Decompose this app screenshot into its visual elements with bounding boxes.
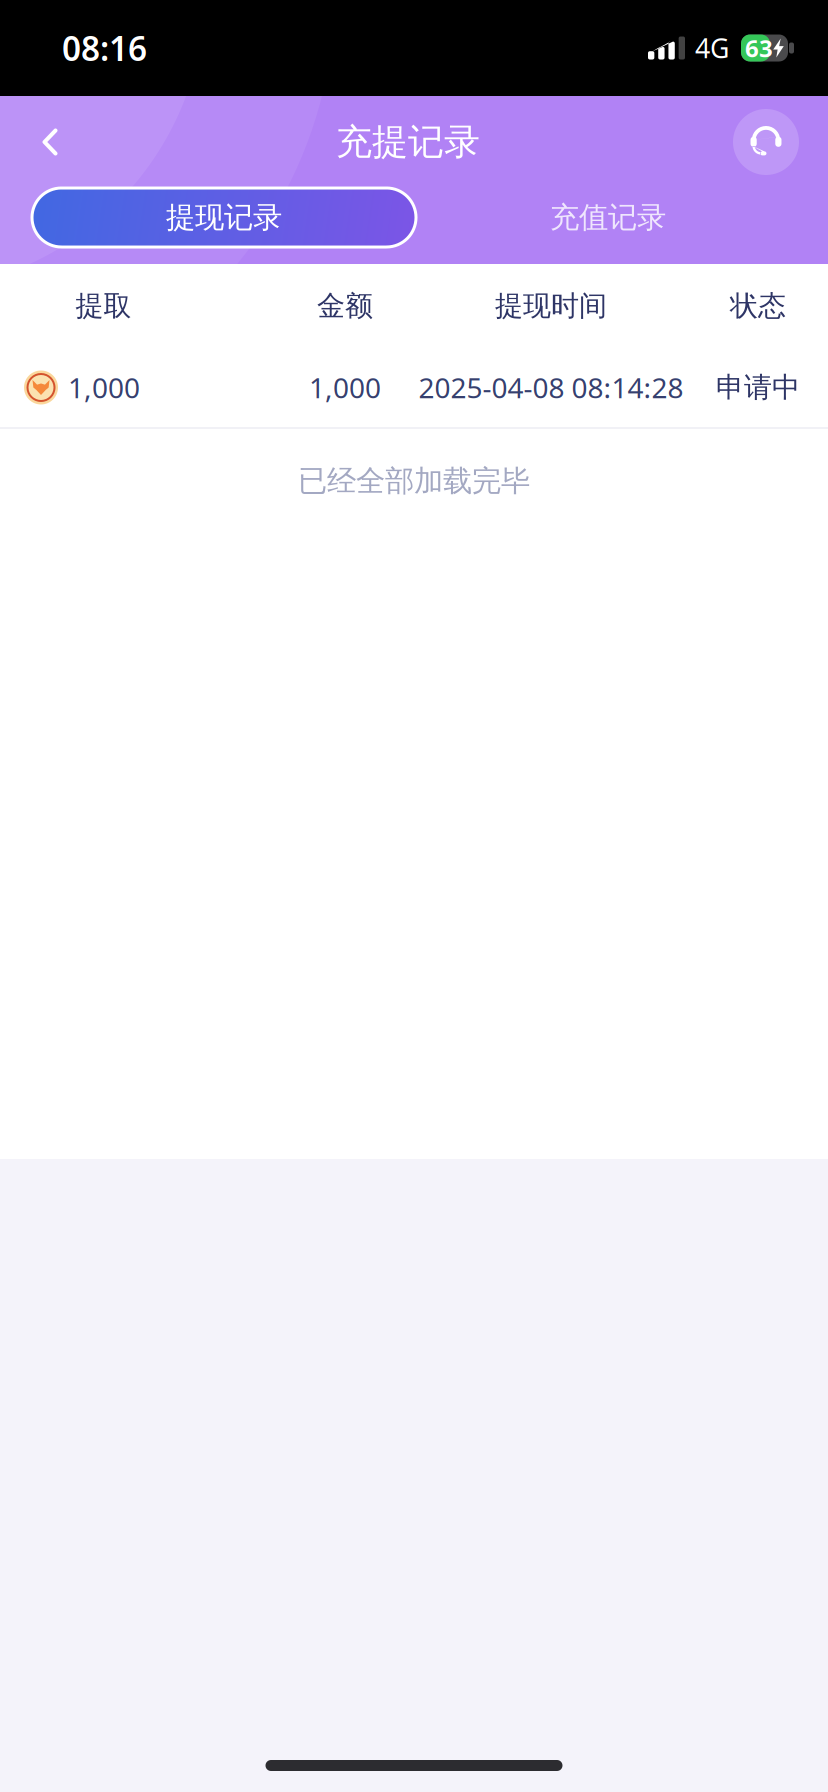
button[interactable]: Customer service [720, 96, 812, 188]
staticText: 金额 [317, 289, 373, 323]
button[interactable]: 1,000 [0, 348, 828, 427]
staticText: 08:16 [62, 26, 147, 70]
staticText: 1,000 [68, 369, 140, 406]
staticText: 充提记录 [336, 120, 480, 164]
staticText: 2025-04-08 08:14:28 [418, 369, 683, 406]
staticText: 63 [745, 32, 773, 64]
staticText: 状态 [730, 289, 786, 323]
staticText: 提现时间 [495, 289, 607, 323]
staticText: 申请中 [716, 370, 800, 405]
staticText: 已经全部加载完毕 [298, 463, 530, 499]
staticText: 提取 [75, 289, 131, 323]
staticText: 提现记录 [166, 199, 282, 235]
staticText: 充值记录 [550, 199, 666, 235]
button[interactable]: 提现记录 [32, 188, 416, 247]
staticText: 4G [695, 30, 729, 66]
button[interactable]: 充值记录 [416, 188, 800, 247]
button[interactable]: Back [4, 96, 96, 188]
staticText: 1,000 [309, 369, 381, 406]
